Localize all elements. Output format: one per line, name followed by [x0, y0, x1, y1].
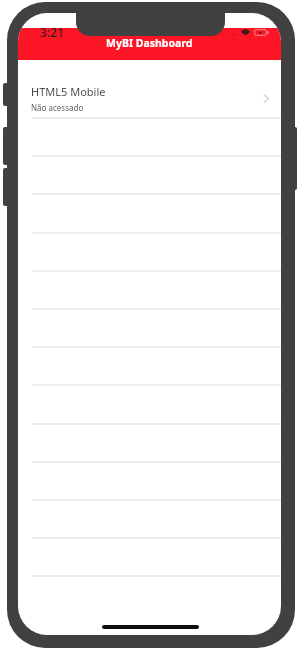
staticText: HTML5 Mobile: [31, 84, 106, 99]
other: Abrir HTML5 Mobile: [263, 93, 270, 104]
staticText: 3:21: [40, 24, 65, 41]
button[interactable]: HTML5 Mobile: [18, 60, 281, 117]
staticText: MyBI Dashboard: [106, 36, 193, 50]
other: Wi-Fi: [241, 27, 250, 35]
other: Bateria: [254, 29, 269, 36]
staticText: Não acessado: [31, 102, 84, 113]
